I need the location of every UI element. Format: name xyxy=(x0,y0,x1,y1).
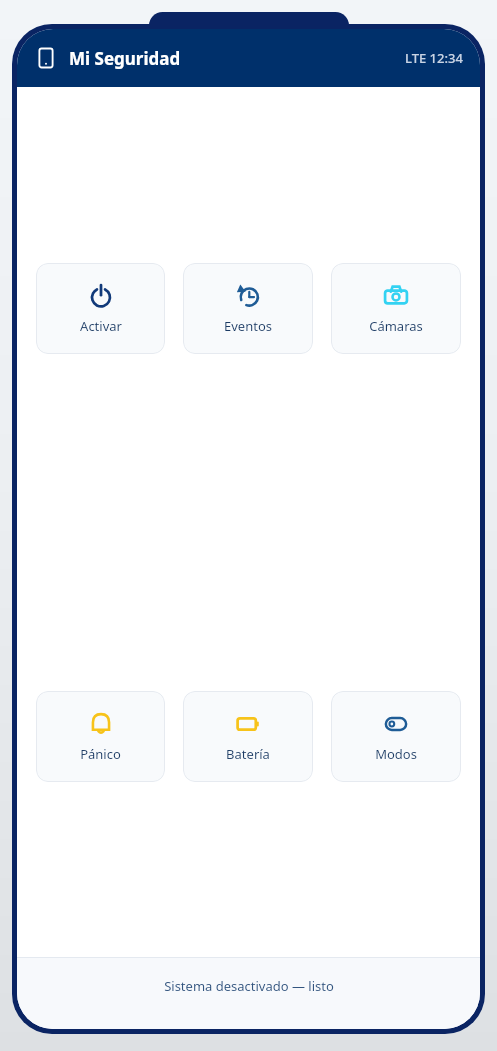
staticText: Activar xyxy=(80,317,122,335)
staticText: Pánico xyxy=(80,745,121,763)
button[interactable]: Cámaras xyxy=(331,263,461,354)
button[interactable]: App xyxy=(34,46,58,70)
button[interactable]: Pánico xyxy=(36,691,165,782)
button[interactable]: Modos xyxy=(331,691,461,782)
staticText: Eventos xyxy=(224,317,272,335)
staticText: Cámaras xyxy=(369,317,423,335)
staticText: LTE 12:34 xyxy=(405,49,463,67)
button[interactable]: Activar xyxy=(36,263,165,354)
staticText: Batería xyxy=(226,745,270,763)
staticText: Modos xyxy=(375,745,417,763)
staticText: Sistema desactivado — listo xyxy=(164,977,334,995)
button[interactable]: Batería xyxy=(183,691,313,782)
button[interactable]: Eventos xyxy=(183,263,313,354)
staticText: Mi Seguridad xyxy=(69,47,181,70)
